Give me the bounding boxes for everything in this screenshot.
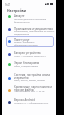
staticText: Android 12 — обновление есть — [14, 102, 49, 105]
staticText: Личные данные и настройки безопасности — [14, 18, 47, 24]
staticText: Хранилище, карта памяти и прочие файлы — [14, 85, 53, 92]
button[interactable] — [2, 83, 56, 93]
staticText: Пакет услуг — [14, 38, 30, 42]
staticText: Обои, спящий режим — [14, 65, 39, 68]
staticText: Приложения и уведомления — [14, 27, 53, 31]
button[interactable] — [2, 25, 56, 35]
button[interactable] — [2, 12, 56, 22]
staticText: Аккаунт — [14, 14, 25, 18]
staticText: Язык, жесты, время, резерв — [14, 79, 45, 82]
staticText: 9:41 — [5, 3, 11, 7]
staticText: 100% — осталось около 26 ч — [14, 55, 46, 58]
staticText: Использовано 25% — 32 ГБ — [14, 90, 45, 93]
button[interactable] — [6, 36, 54, 47]
staticText: Реком.: проверить обновления системы — [14, 41, 38, 47]
button[interactable] — [2, 60, 56, 70]
staticText: Версия Android — [14, 98, 35, 102]
button[interactable] — [2, 50, 56, 60]
button[interactable] — [2, 97, 56, 107]
staticText: Разрешения, приложения по умолч. уведомл… — [14, 30, 55, 36]
button[interactable] — [2, 71, 56, 81]
staticText: Батарея устройства — [14, 51, 41, 55]
staticText: Система, настройки языка и времени — [14, 73, 50, 80]
staticText: Настройки — [7, 8, 27, 13]
staticText: Экран блокировки — [14, 61, 40, 65]
